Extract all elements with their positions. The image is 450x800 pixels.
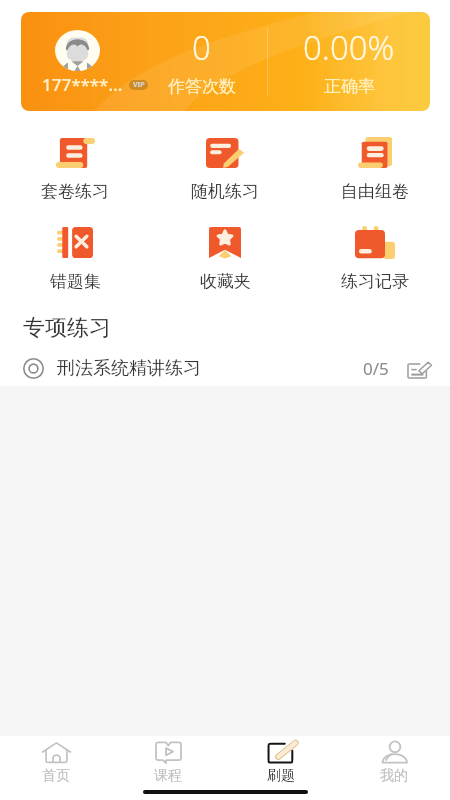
button[interactable]: 自由组卷 [300,136,450,202]
staticText: 专项练习 [23,314,111,342]
button[interactable]: 练习记录 [300,226,450,292]
staticText: 作答次数 [168,76,236,97]
button[interactable]: 177****... [21,12,430,111]
button[interactable]: 错题集 [0,226,150,292]
staticText: 我的 [380,767,408,785]
staticText: 练习记录 [341,271,409,292]
staticText: 0 [192,25,211,70]
staticText: 课程 [154,767,182,785]
button[interactable]: 收藏夹 [150,226,300,292]
staticText: 0.00% [303,25,395,70]
button[interactable]: 我的 [337,736,450,786]
button[interactable]: 套卷练习 [0,136,150,202]
button[interactable]: 刷题 [224,736,337,786]
staticText: 套卷练习 [41,181,109,202]
staticText: 0/5 [363,357,389,380]
staticText: 正确率 [324,76,375,97]
staticText: 随机练习 [191,181,259,202]
button[interactable]: Edit exercise [408,358,429,378]
button[interactable]: 课程 [112,736,224,786]
staticText: 收藏夹 [200,271,251,292]
staticText: 首页 [42,767,70,785]
staticText: 177****... [42,73,123,96]
staticText: 自由组卷 [341,181,409,202]
staticText: 刷题 [267,767,295,785]
staticText: 错题集 [50,271,101,292]
staticText: 刑法系统精讲练习 [57,357,201,380]
button[interactable]: 首页 [0,736,112,786]
staticText: VIP [133,80,145,90]
button[interactable]: 随机练习 [150,136,300,202]
button[interactable]: 刑法系统精讲练习 [0,350,450,386]
